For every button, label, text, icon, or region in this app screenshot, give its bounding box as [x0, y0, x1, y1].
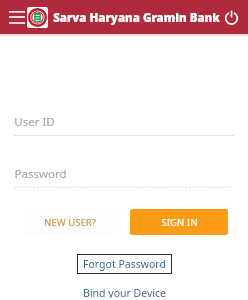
- staticText: NEW USER?: [44, 216, 96, 229]
- button[interactable]: NEW USER?: [22, 209, 118, 235]
- staticText: User ID: [14, 114, 55, 130]
- staticText: Bind your Device: [83, 286, 166, 298]
- button[interactable]: Bind your Device: [77, 284, 172, 300]
- button[interactable]: User ID: [0, 114, 248, 136]
- staticText: SIGN IN: [161, 216, 198, 229]
- staticText: Password: [14, 166, 67, 182]
- button[interactable]: Password: [0, 166, 248, 188]
- button[interactable]: Forgot Password: [76, 253, 173, 275]
- button[interactable]: Logout: [214, 0, 248, 34]
- button[interactable]: Menu: [0, 0, 34, 34]
- button[interactable]: SIGN IN: [130, 209, 228, 235]
- staticText: Forgot Password: [83, 257, 166, 271]
- staticText: Sarva Haryana Gramin Bank: [53, 10, 220, 26]
